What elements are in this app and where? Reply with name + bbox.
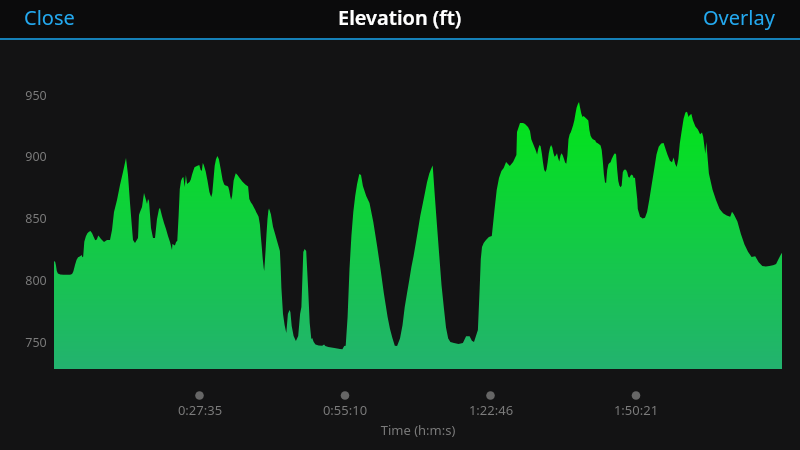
button[interactable]: Close <box>0 1 95 38</box>
staticText: Time (h:m:s) <box>338 421 498 439</box>
staticText: Overlay <box>703 4 775 31</box>
staticText: 800 <box>16 272 56 289</box>
staticText: 750 <box>16 334 56 351</box>
button[interactable]: Overlay <box>683 1 800 38</box>
staticText: 0:27:35 <box>155 401 245 419</box>
staticText: 0:55:10 <box>300 401 390 419</box>
staticText: Close <box>24 4 75 31</box>
staticText: 900 <box>16 148 56 165</box>
staticText: 1:22:46 <box>446 401 536 419</box>
staticText: 950 <box>16 87 56 104</box>
staticText: 850 <box>16 210 56 227</box>
staticText: Elevation (ft) <box>338 4 462 31</box>
staticText: 1:50:21 <box>591 401 681 419</box>
